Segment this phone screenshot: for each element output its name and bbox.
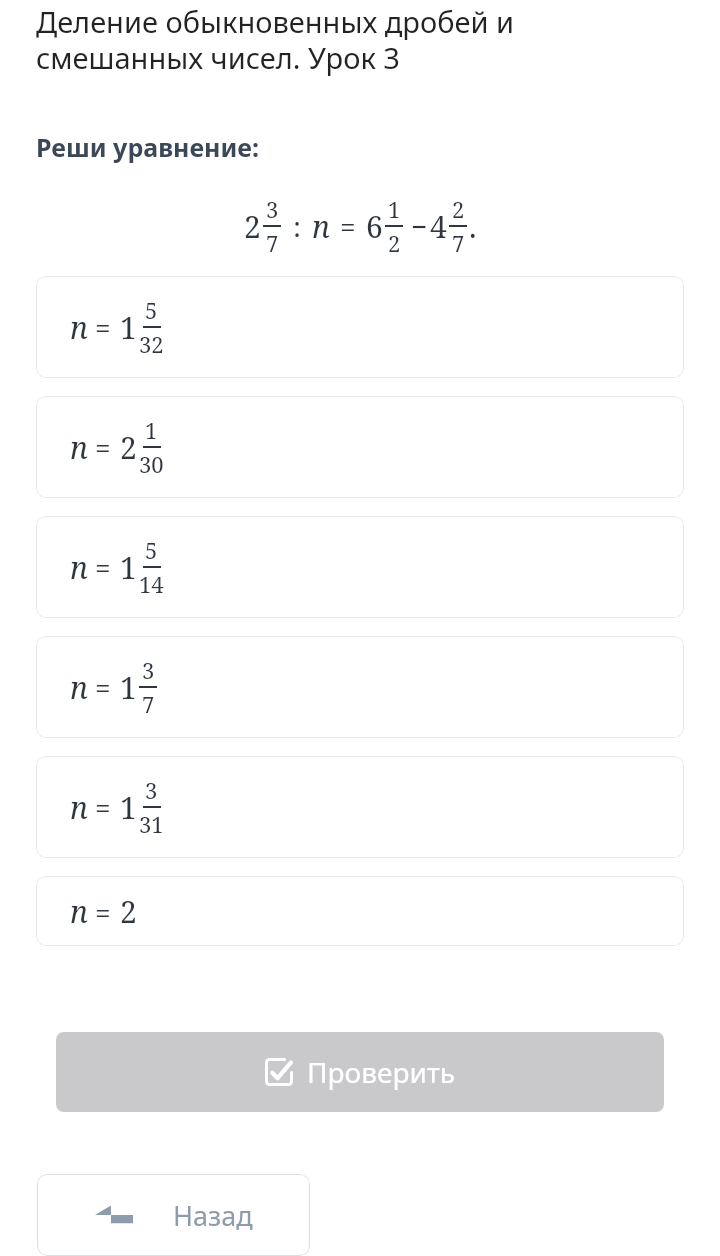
staticText: 2 [120, 891, 137, 932]
staticText: = [95, 668, 111, 706]
staticText: 1 [120, 547, 137, 588]
staticText: = [95, 788, 111, 826]
staticText: 3 [142, 655, 155, 685]
button[interactable]: n [36, 876, 684, 946]
staticText: 7 [452, 228, 465, 258]
button[interactable]: n [36, 636, 684, 738]
staticText: 1 [145, 415, 158, 445]
staticText: 7 [266, 228, 279, 258]
staticText: = [95, 428, 111, 466]
staticText: : [293, 207, 302, 245]
button[interactable]: Назад [37, 1174, 310, 1256]
staticText: Реши уравнение: [36, 130, 259, 164]
staticText: − [411, 207, 428, 245]
staticText: = [95, 308, 111, 346]
staticText: . [469, 206, 477, 247]
staticText: 3 [266, 194, 279, 224]
staticText: 1 [120, 667, 137, 708]
staticText: 7 [142, 689, 155, 719]
staticText: 31 [139, 809, 164, 839]
staticText: 1 [388, 194, 401, 224]
staticText: n [70, 547, 88, 588]
other: Назад [95, 1203, 133, 1229]
staticText: 3 [145, 775, 158, 805]
staticText: 32 [139, 329, 164, 359]
staticText: 6 [366, 206, 383, 247]
staticText: 1 [120, 787, 137, 828]
staticText: Проверить [307, 1053, 456, 1091]
staticText: 2 [120, 427, 137, 468]
staticText: 1 [120, 307, 137, 348]
staticText: 4 [430, 206, 447, 247]
staticText: Деление обыкновенных дробей и смешанных … [36, 2, 660, 78]
staticText: n [70, 427, 88, 468]
staticText: n [70, 307, 88, 348]
button[interactable]: n [36, 516, 684, 618]
staticText: 2 [388, 228, 401, 258]
staticText: n [70, 891, 88, 932]
button[interactable]: n [36, 756, 684, 858]
staticText: Назад [173, 1197, 253, 1234]
staticText: = [340, 207, 356, 245]
staticText: 14 [139, 569, 164, 599]
staticText: 2 [452, 194, 465, 224]
button[interactable]: n [36, 276, 684, 378]
staticText: n [312, 206, 330, 247]
staticText: 5 [145, 535, 158, 565]
staticText: = [95, 548, 111, 586]
staticText: 30 [139, 449, 164, 479]
button[interactable]: n [36, 396, 684, 498]
staticText: 2 [244, 206, 261, 247]
staticText: = [95, 893, 111, 931]
staticText: n [70, 787, 88, 828]
staticText: 5 [145, 295, 158, 325]
staticText: n [70, 667, 88, 708]
button[interactable]: Проверить [56, 1032, 664, 1112]
